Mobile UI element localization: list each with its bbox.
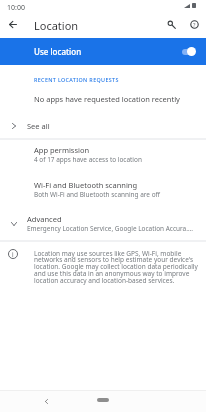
staticText: 4 of 17 apps have access to location — [34, 155, 142, 164]
staticText: Both Wi-Fi and Bluetooth scanning are of… — [34, 190, 161, 199]
staticText: See all — [27, 121, 50, 131]
button[interactable]: Search — [162, 15, 180, 33]
button[interactable]: Back — [39, 394, 53, 408]
button[interactable]: Use location — [0, 38, 206, 65]
button[interactable]: App permission — [0, 142, 206, 176]
staticText: i — [12, 250, 14, 258]
staticText: 10:00 — [7, 3, 25, 13]
staticText: Advanced — [27, 214, 62, 224]
staticText: Wi-Fi and Bluetooth scanning — [34, 180, 138, 190]
staticText: Emergency Location Service, Google Locat… — [27, 224, 193, 233]
button[interactable]: Help — [185, 15, 203, 33]
staticText: No apps have requested location recently — [34, 94, 180, 104]
staticText: App permission — [34, 145, 90, 155]
staticText: RECENT LOCATION REQUESTS — [34, 76, 119, 83]
button[interactable]: Advanced — [0, 210, 206, 237]
staticText: Location may use sources like GPS, Wi-Fi… — [34, 249, 200, 285]
button[interactable]: Back — [4, 15, 22, 33]
staticText: Location — [34, 18, 79, 33]
button[interactable]: See all — [0, 115, 206, 137]
staticText: Use location — [34, 46, 82, 57]
staticText: ? — [193, 21, 196, 29]
button[interactable]: Wi-Fi and Bluetooth scanning — [0, 177, 206, 211]
